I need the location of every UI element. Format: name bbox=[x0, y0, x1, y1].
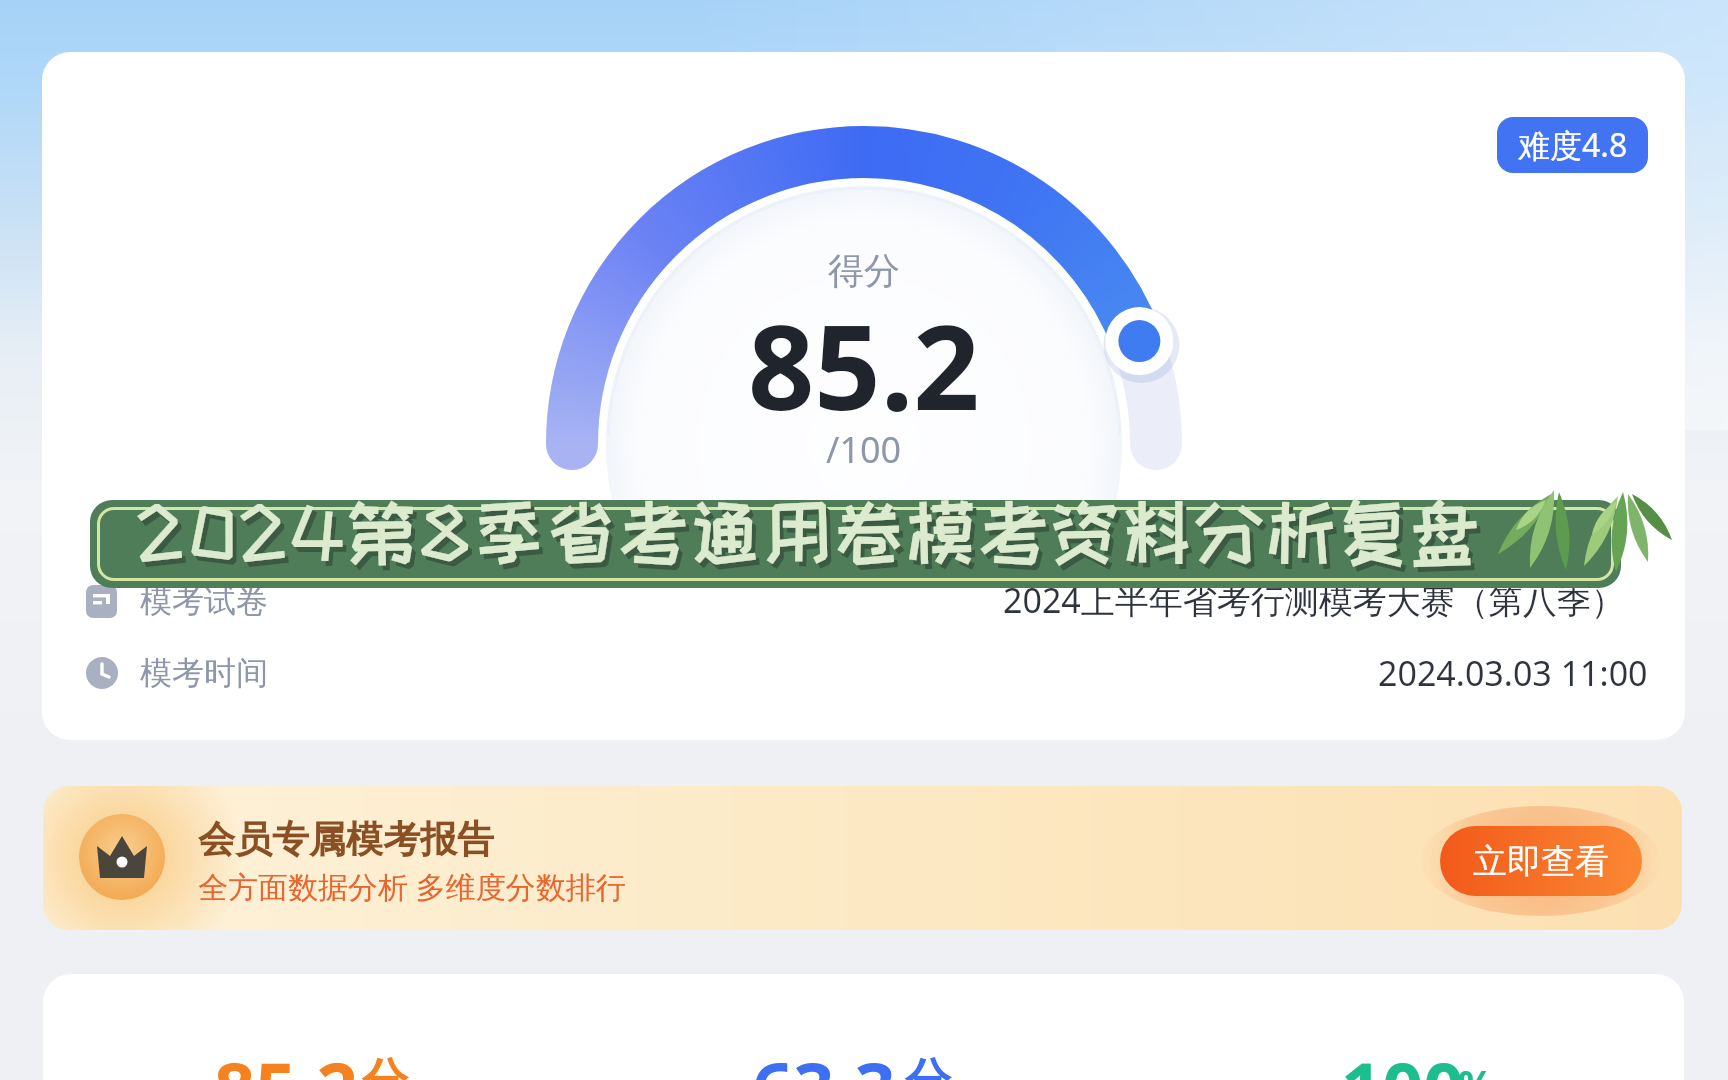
staticText: 得分 bbox=[828, 248, 900, 293]
staticText: 2024上半年省考行测模考大赛（第八季） bbox=[1003, 577, 1625, 623]
staticText: 立即查看 bbox=[1473, 840, 1609, 883]
staticText: 2024第8季省考通用卷模考资料分析复盘 bbox=[137, 494, 1483, 569]
staticText: 2024.03.03 11:00 bbox=[1378, 650, 1648, 696]
staticText: 2024第8季省考通用卷模考资料分析复盘 bbox=[141, 499, 1487, 574]
staticText: 分 bbox=[362, 1052, 408, 1080]
button[interactable]: 会员专属模考报告 bbox=[43, 786, 1682, 930]
staticText: 模考试卷 bbox=[140, 581, 268, 621]
staticText: /100 bbox=[826, 425, 902, 474]
staticText: 分 bbox=[905, 1052, 951, 1080]
staticText: 会员专属模考报告 bbox=[198, 816, 494, 860]
staticText: 全方面数据分析 多维度分数排行 bbox=[198, 866, 626, 906]
staticText: 难度4.8 bbox=[1518, 123, 1628, 167]
staticText: 模考时间 bbox=[140, 653, 268, 693]
button[interactable]: 立即查看 bbox=[1440, 826, 1642, 896]
staticText: 85.2 bbox=[214, 1038, 358, 1080]
staticText: 85.2 bbox=[748, 286, 980, 416]
staticText: 100 bbox=[1341, 1038, 1465, 1080]
staticText: % bbox=[1458, 1056, 1495, 1080]
staticText: 63.3 bbox=[752, 1038, 896, 1080]
